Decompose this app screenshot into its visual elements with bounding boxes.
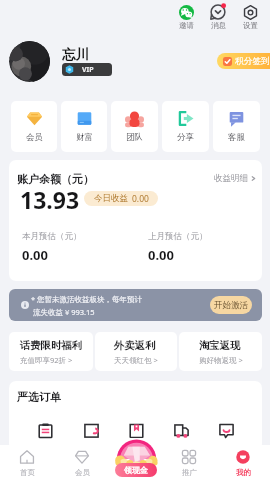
staticText: VIP bbox=[82, 65, 94, 75]
staticText: 领现金 bbox=[124, 465, 148, 475]
staticText: 0.00 bbox=[132, 193, 149, 205]
staticText: 消息 bbox=[211, 21, 226, 30]
staticText: 设置 bbox=[243, 21, 258, 30]
staticText: 充值即享92折 > bbox=[20, 355, 73, 365]
staticText: 我的 bbox=[236, 468, 251, 477]
staticText: 积分签到 bbox=[235, 56, 270, 67]
button[interactable]: Settings bbox=[236, 4, 264, 30]
button[interactable]: 待付款 bbox=[22, 423, 68, 438]
button[interactable]: Avatar bbox=[9, 41, 50, 82]
staticText: 收益明细 bbox=[214, 173, 248, 184]
staticText: 天天领红包 > bbox=[114, 355, 158, 365]
staticText: 团队 bbox=[126, 132, 143, 143]
staticText: 流失收益 ¥ 993.15 bbox=[33, 307, 95, 317]
staticText: 淘宝返现 bbox=[199, 339, 241, 352]
staticText: 财富 bbox=[76, 132, 93, 143]
staticText: 上月预估（元） bbox=[148, 231, 208, 242]
button[interactable]: 待发货 bbox=[159, 423, 204, 438]
button[interactable]: 财富 bbox=[61, 101, 107, 152]
staticText: 邀请 bbox=[179, 21, 194, 30]
button[interactable]: Member bbox=[66, 450, 98, 477]
staticText: 外卖返利 bbox=[114, 339, 156, 352]
staticText: 会员 bbox=[75, 468, 90, 477]
button[interactable]: 售后 bbox=[204, 423, 249, 438]
staticText: 开始激活 bbox=[214, 300, 248, 311]
button[interactable]: Invite bbox=[172, 4, 200, 30]
button[interactable]: Promotion bbox=[173, 450, 205, 477]
button[interactable]: 外卖返利 bbox=[95, 332, 177, 371]
staticText: 0.00 bbox=[22, 246, 48, 264]
staticText: 今日收益 bbox=[94, 193, 128, 204]
button[interactable]: VIP bbox=[62, 63, 112, 76]
staticText: 13.93 bbox=[20, 184, 80, 215]
button[interactable]: 开始激活 bbox=[210, 296, 252, 314]
staticText: 严选订单 bbox=[17, 390, 61, 404]
button[interactable]: 淘宝返现 bbox=[179, 332, 262, 371]
staticText: 客服 bbox=[228, 132, 245, 143]
button[interactable]: 待收货 bbox=[114, 423, 159, 438]
staticText: 账户余额（元） bbox=[17, 172, 94, 186]
staticText: 忘川 bbox=[62, 46, 89, 63]
staticText: 话费限时福利 bbox=[20, 339, 82, 352]
staticText: 分享 bbox=[177, 132, 194, 143]
button[interactable]: Messages bbox=[204, 4, 232, 30]
staticText: 会员 bbox=[26, 132, 43, 143]
button[interactable]: 团队 bbox=[111, 101, 158, 152]
staticText: 推广 bbox=[182, 468, 197, 477]
button[interactable]: 领现金 bbox=[115, 463, 157, 477]
button[interactable]: 领现金 bbox=[116, 439, 157, 480]
button[interactable]: 待分享 bbox=[68, 423, 114, 438]
staticText: 首页 bbox=[20, 468, 35, 477]
staticText: 本月预估（元） bbox=[22, 231, 82, 242]
staticText: 购好物返现 > bbox=[199, 355, 243, 365]
button[interactable]: Home bbox=[11, 450, 43, 477]
button[interactable]: Mine bbox=[227, 450, 259, 477]
button[interactable]: 话费限时福利 bbox=[9, 332, 93, 371]
staticText: 0.00 bbox=[148, 246, 174, 264]
button[interactable]: 分享 bbox=[162, 101, 209, 152]
button[interactable]: 会员 bbox=[11, 101, 57, 152]
button[interactable]: 积分签到 bbox=[217, 53, 270, 69]
button[interactable]: 收益明细 bbox=[214, 173, 257, 184]
button[interactable]: 客服 bbox=[213, 101, 260, 152]
staticText: * 您暂未激活收益板块，每年预计 bbox=[31, 294, 143, 304]
